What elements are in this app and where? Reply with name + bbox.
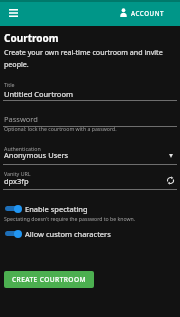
button[interactable]: Regenerate URL <box>165 175 176 186</box>
staticText: Vanity URL <box>4 170 31 177</box>
button[interactable]: Allow custom characters <box>0 228 180 239</box>
staticText: Optional: lock the courtroom with a pass… <box>4 125 117 132</box>
staticText: dpx3fp <box>4 176 29 186</box>
staticText: Courtroom <box>4 31 59 45</box>
button[interactable]: Enable spectating <box>0 203 180 214</box>
button[interactable]: ACCOUNT <box>120 8 165 17</box>
staticText: Title <box>4 81 15 88</box>
staticText: Spectating doesn't require the password … <box>4 215 136 222</box>
staticText: Enable spectating <box>25 204 88 214</box>
staticText: ACCOUNT <box>131 9 165 17</box>
staticText: Password <box>4 114 38 124</box>
button[interactable]: CREATE COURTROOM <box>4 271 94 288</box>
staticText: Authentication <box>4 145 41 152</box>
staticText: CREATE COURTROOM <box>12 275 86 284</box>
staticText: Create your own real-time courtroom and … <box>4 47 172 69</box>
staticText: Allow custom characters <box>25 229 111 239</box>
staticText: Untitled Courtroom <box>4 89 73 99</box>
button[interactable]: Menu <box>4 4 22 22</box>
staticText: Anonymous Users <box>4 150 69 160</box>
